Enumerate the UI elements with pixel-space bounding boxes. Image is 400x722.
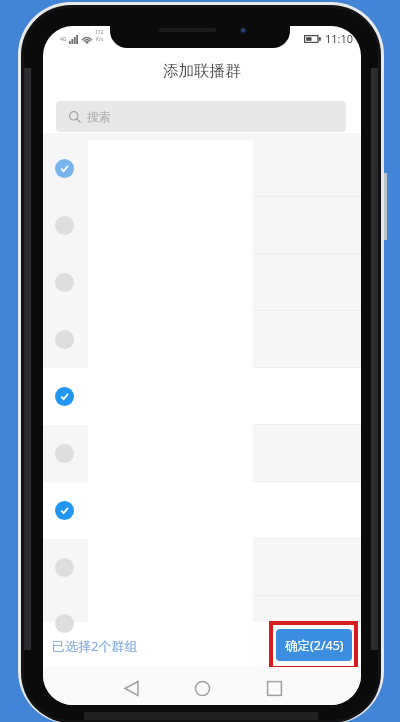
staticText: 4G	[60, 36, 67, 43]
staticText: 确定(2/45)	[285, 637, 344, 654]
staticText: 已选择2个群组	[52, 637, 138, 655]
button[interactable]	[43, 482, 361, 539]
button[interactable]	[43, 425, 361, 482]
button[interactable]	[43, 539, 361, 596]
button[interactable]: Recents	[258, 667, 290, 705]
button[interactable]	[43, 368, 361, 425]
button[interactable]	[43, 311, 361, 368]
button[interactable]: 确定(2/45)	[276, 629, 352, 661]
staticText: 11:10	[325, 31, 354, 46]
staticText: K/s	[96, 36, 104, 43]
staticText: 172	[95, 29, 104, 36]
button[interactable]	[43, 596, 361, 622]
button[interactable]: Home	[186, 667, 218, 705]
button[interactable]	[43, 140, 361, 197]
button[interactable]: 搜索	[56, 101, 346, 132]
staticText: 搜索	[87, 109, 111, 124]
button[interactable]: Back	[115, 667, 147, 705]
button[interactable]	[43, 197, 361, 254]
button[interactable]	[43, 254, 361, 311]
staticText: 添加联播群	[163, 61, 241, 81]
